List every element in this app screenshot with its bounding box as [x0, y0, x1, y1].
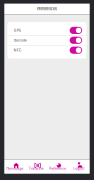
button[interactable]: GPS: [7, 26, 86, 35]
staticText: Barcode: [14, 38, 27, 42]
staticText: GPS: [14, 28, 21, 32]
staticText: Preference: [49, 167, 66, 171]
staticText: Logout: [73, 167, 84, 171]
button[interactable]: Barcode: [7, 36, 86, 45]
button[interactable]: Homepage: [4, 160, 26, 174]
button[interactable]: Trialware: [26, 160, 47, 174]
button[interactable]: NFC: [7, 45, 86, 55]
staticText: Trialware: [29, 167, 44, 171]
button[interactable]: Preference: [47, 160, 68, 174]
staticText: Homepage: [6, 167, 23, 171]
staticText: NFC: [14, 48, 22, 52]
staticText: Preferences: [37, 7, 57, 11]
button[interactable]: Logout: [68, 160, 90, 174]
